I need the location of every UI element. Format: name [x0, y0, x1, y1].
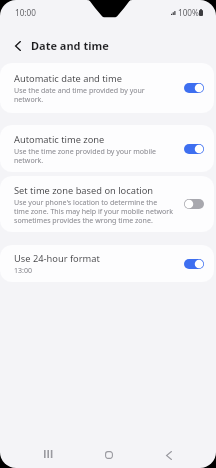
button[interactable]: On	[184, 144, 204, 154]
button[interactable]: Use 24-hour format	[0, 245, 214, 282]
button[interactable]: Back	[156, 442, 182, 468]
button[interactable]: Home	[96, 442, 122, 468]
staticText: 13:00	[14, 265, 33, 275]
staticText: Use your phone's location to determine t…	[14, 197, 173, 225]
staticText: Use the time zone provided by your mobil…	[14, 146, 157, 165]
button[interactable]: Recent apps	[35, 441, 61, 467]
staticText: Set time zone based on location	[14, 184, 154, 197]
staticText: Use the date and time provided by your n…	[14, 85, 145, 104]
staticText: Automatic time zone	[14, 133, 105, 146]
button[interactable]: Set time zone based on location	[0, 176, 214, 232]
button[interactable]: On	[184, 259, 204, 269]
staticText: Automatic date and time	[14, 72, 122, 85]
button[interactable]: Navigate up	[5, 33, 30, 58]
staticText: 100%	[178, 7, 199, 18]
button[interactable]: Automatic time zone	[0, 125, 214, 172]
staticText: Use 24-hour format	[14, 252, 100, 265]
button[interactable]: Off	[184, 199, 204, 209]
staticText: 10:00	[15, 7, 36, 18]
button[interactable]: Automatic date and time	[0, 63, 214, 113]
button[interactable]: On	[184, 83, 204, 93]
staticText: Date and time	[31, 38, 109, 53]
